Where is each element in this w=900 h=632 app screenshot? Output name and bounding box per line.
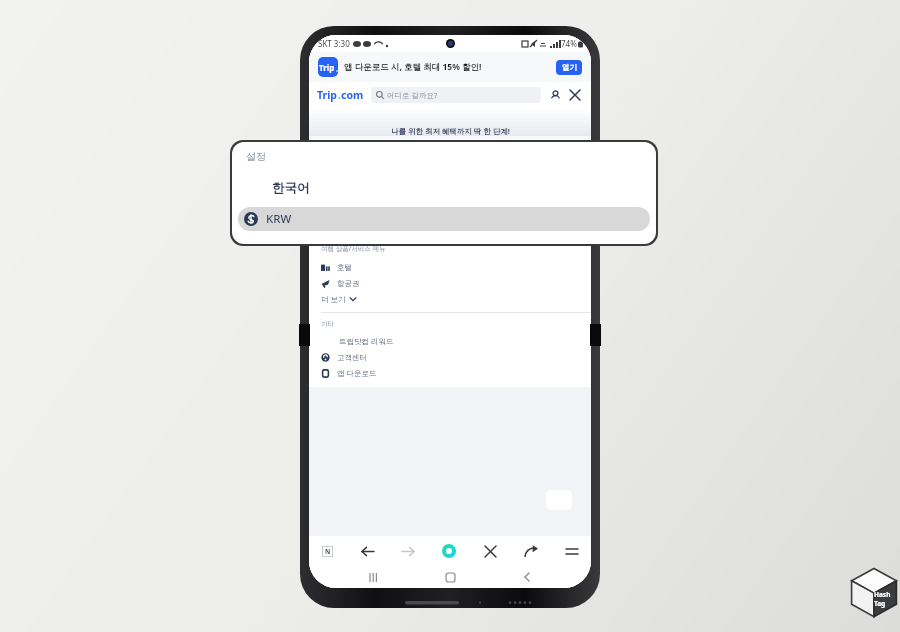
button[interactable]: Close [567,87,583,103]
staticText: 74% [561,38,577,49]
button[interactable]: 항공권 [321,275,591,291]
button[interactable]: Menu [563,542,581,560]
button[interactable]: Home [437,566,463,588]
button[interactable]: 앱 다운로드 [321,365,591,381]
staticText: N [325,547,331,556]
staticText: 설정 [246,150,266,163]
button[interactable]: Back [358,542,376,560]
button[interactable]: 트립닷컴 리워드 [321,333,591,349]
staticText: 앱 다운로드 [337,368,377,378]
button[interactable]: Naver home [319,543,335,559]
button[interactable]: 호텔 [321,259,591,275]
staticText: KRW [266,211,292,227]
button[interactable]: KRW [238,207,650,231]
button[interactable]: Forward [399,542,417,560]
button[interactable]: Back [514,566,540,588]
button[interactable]: 한국어 [232,175,656,201]
staticText: 나를 위한 최저 혜택까지 딱 한 단계! [391,126,510,136]
button[interactable]: 더 보기 [321,291,591,307]
staticText: 한국어 [272,180,310,196]
staticText: com [341,88,364,102]
staticText: Hash [874,590,891,599]
button[interactable]: Trip [318,57,338,77]
button[interactable]: Close tab [481,542,499,560]
staticText: 앱 다운로드 시, 호텔 최대 15% 할인! [344,61,482,73]
staticText: 기타 [321,320,334,328]
staticText: Trip [317,88,338,102]
button[interactable]: 열기 [556,60,582,75]
staticText: 여행 상품/서비스 메뉴 [321,244,386,253]
staticText: Tag [874,599,886,608]
staticText: 더 보기 [321,294,346,304]
staticText: 트립닷컴 리워드 [339,336,394,346]
staticText: 항공권 [337,279,360,288]
staticText: Trip [319,62,335,73]
staticText: 열기 [562,63,577,72]
button[interactable]: Account [547,87,563,103]
button[interactable]: Recents [360,566,386,588]
button[interactable]: Share [522,542,540,560]
button[interactable]: 고객센터 [321,349,591,365]
staticText: 호텔 [337,263,352,272]
button[interactable]: 어디로 갈까요? [371,87,541,103]
staticText: . [338,88,341,102]
staticText: SKT 3:30 [318,38,350,49]
staticText: 고객센터 [337,353,367,362]
staticText: 어디로 갈까요? [387,90,438,100]
button[interactable]: Home [440,542,458,560]
